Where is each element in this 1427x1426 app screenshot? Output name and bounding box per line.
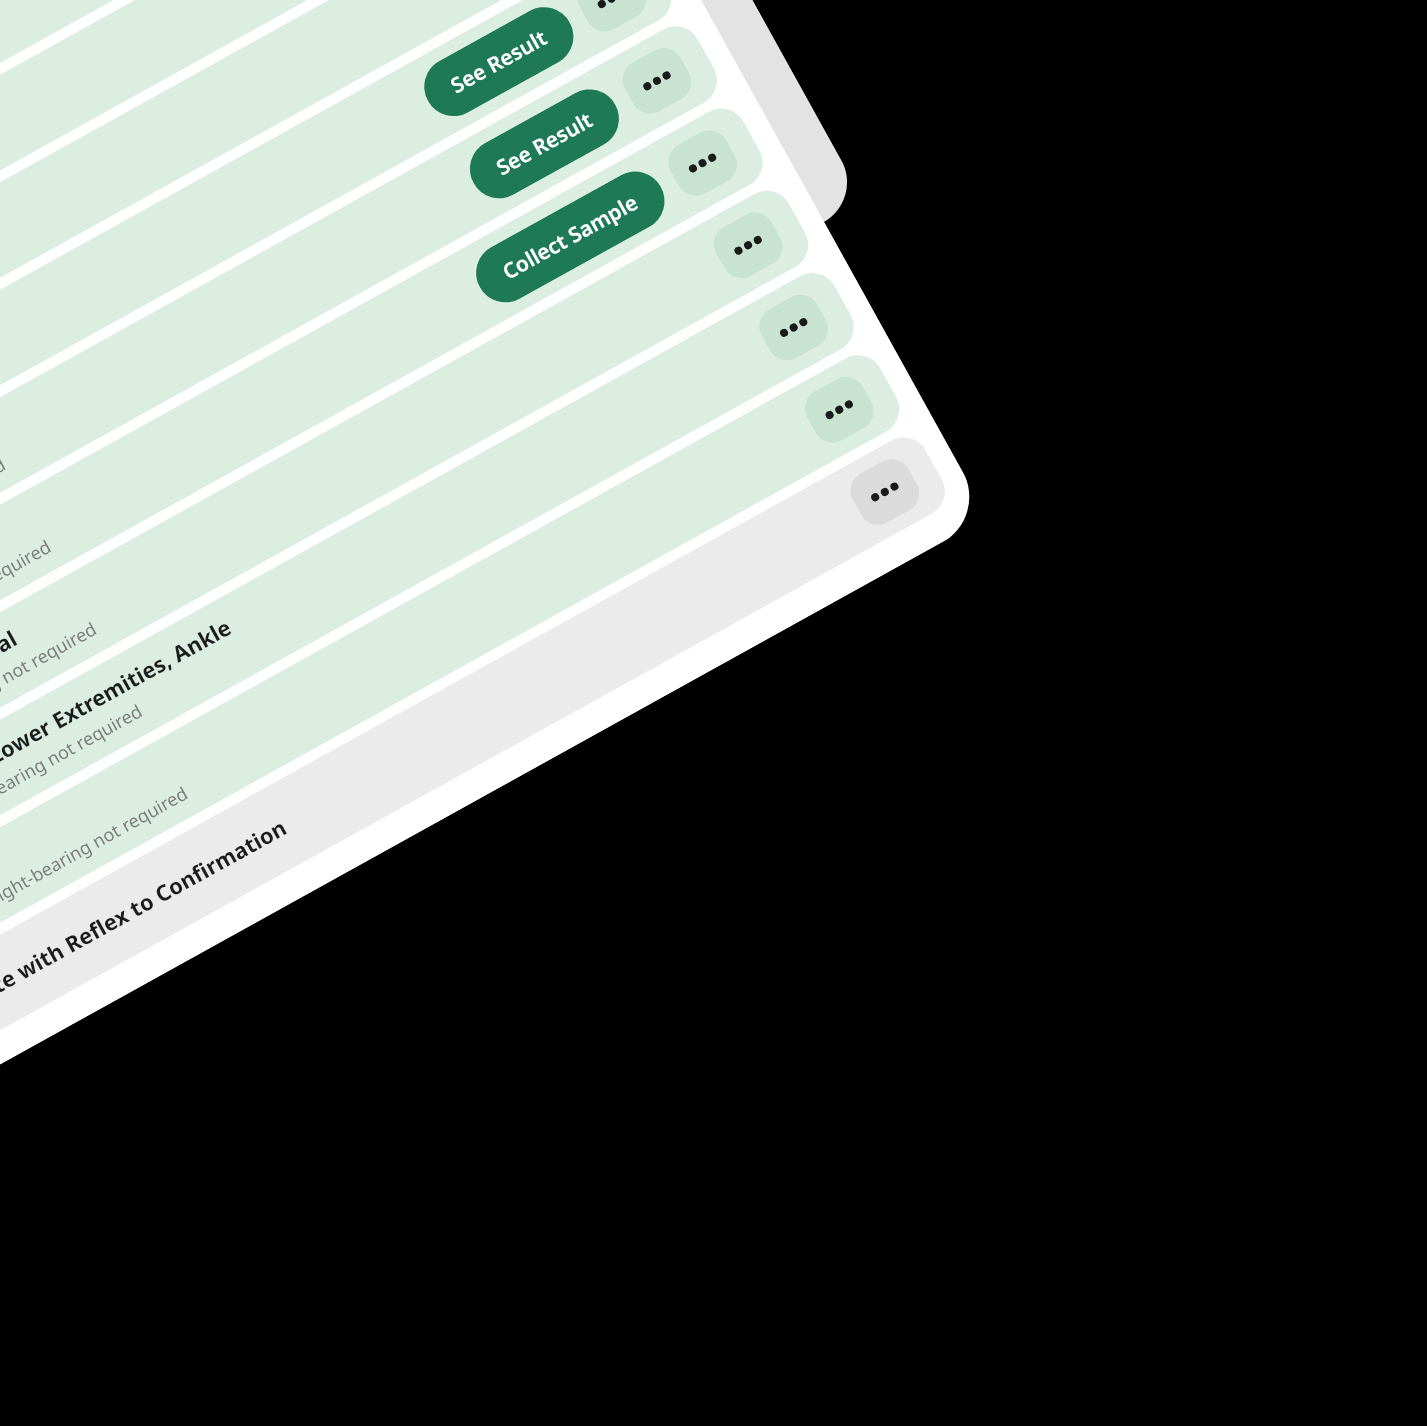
button[interactable]: Culture, Wound or Body Fluid <box>0 99 772 843</box>
staticText: in-house, 2 views, Complete, Weight-bear… <box>0 781 193 1039</box>
staticText: Ingrown Toenail, Partial Nail Removal <box>0 623 22 849</box>
button[interactable]: Lipid Panel, Fasting <box>0 0 498 350</box>
button[interactable]: Collect Sample <box>465 161 675 313</box>
button[interactable]: More options <box>798 370 881 450</box>
staticText: Collect Sample <box>497 188 643 286</box>
staticText: See Result <box>491 105 598 182</box>
staticText: Hepatitis Panel, Acute with Reflex to Co… <box>0 812 291 1106</box>
button[interactable]: See Result <box>414 0 584 127</box>
button[interactable]: Ingrown Toenail, Partial Nail Removal <box>0 181 817 925</box>
button[interactable]: More options <box>752 287 835 367</box>
staticText: in-house, 2 views, Complete, Weight-bear… <box>0 698 147 956</box>
staticText: in-house, 2 views, Complete, Weight-bear… <box>0 616 101 874</box>
button[interactable]: Hemoglobin A1c, Reflex Included <box>0 0 635 597</box>
button[interactable]: Comprehensive Metabolic Panel <box>0 0 453 268</box>
button[interactable]: Breast Cancer Screening <box>0 346 909 1090</box>
button[interactable]: Complete Blood Count (CBC) with Differen… <box>0 0 407 185</box>
button[interactable]: More options <box>615 41 698 121</box>
button[interactable]: Basic Metabolic Panel, Reflex Included <box>0 17 726 761</box>
button[interactable]: More options <box>843 452 926 532</box>
staticText: See Result <box>445 23 552 100</box>
button[interactable]: More options <box>707 205 790 285</box>
button[interactable]: Lab panel <box>0 428 954 1172</box>
staticText: in-house, 2 views, Complete, Weight-bear… <box>0 534 56 792</box>
button[interactable]: Urinalysis, Complete with Microscopy <box>0 0 544 432</box>
staticText: Radiologic Examination X-ray, Lower Extr… <box>0 611 236 931</box>
staticText: in-house, 2 views, Complete, Weight-bear… <box>0 452 10 710</box>
button[interactable]: Vitamin D 25-Hydroxy, Reflex Included <box>0 0 681 679</box>
button[interactable]: Radiologic Examination X-ray, Lower Extr… <box>0 264 863 1008</box>
button[interactable]: More options <box>661 123 744 203</box>
button[interactable]: See Result <box>459 79 630 209</box>
button[interactable]: Thyroid Stimulating Hormone, Reflex Incl… <box>0 0 590 514</box>
button[interactable]: More options <box>570 0 653 39</box>
